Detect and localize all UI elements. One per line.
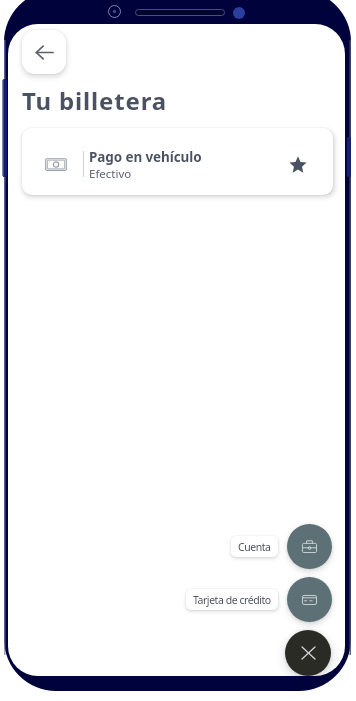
button[interactable]: Tarjeta de crédito [186, 589, 278, 610]
button[interactable]: Cuenta [287, 524, 332, 569]
button[interactable]: Cuenta [231, 536, 278, 557]
staticText: Tarjeta de crédito [193, 593, 271, 607]
staticText: Pago en vehículo [89, 148, 202, 166]
button[interactable]: Close menu [285, 630, 331, 676]
staticText: Efectivo [89, 166, 132, 182]
button[interactable]: Pago en vehículo [22, 128, 333, 195]
staticText: Cuenta [238, 540, 271, 554]
button[interactable]: Back [22, 30, 66, 74]
button[interactable]: Favorite [278, 145, 318, 185]
button[interactable]: Tarjeta de crédito [287, 577, 332, 622]
staticText: Tu billetera [22, 84, 168, 117]
